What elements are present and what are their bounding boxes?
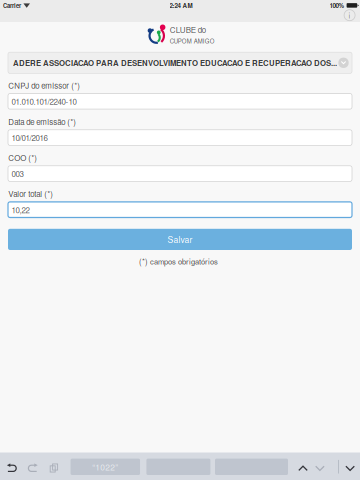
button[interactable]: Salvar: [8, 229, 352, 250]
staticText: 2:24 AM: [169, 1, 192, 10]
staticText: CLUBE do: [170, 24, 206, 35]
button[interactable]: Hide keyboard: [342, 460, 358, 476]
staticText: 10/01/2016: [12, 132, 48, 143]
button[interactable]: Paste: [46, 460, 62, 476]
button[interactable]: ADERE ASSOCIACAO PARA DESENVOLVIMENTO ED…: [8, 52, 352, 73]
staticText: “1022”: [92, 461, 118, 473]
button[interactable]: Info: [343, 9, 356, 22]
button[interactable]: Undo: [4, 460, 20, 476]
staticText: ADERE ASSOCIACAO PARA DESENVOLVIMENTO ED…: [13, 57, 337, 68]
staticText: CNPJ do emissor (*): [8, 80, 80, 91]
staticText: (*) campos obrigatórios: [139, 256, 218, 267]
staticText: Salvar: [167, 233, 192, 245]
staticText: CUPOM AMIGO: [170, 37, 215, 45]
button[interactable]: “1022”: [70, 459, 140, 475]
button[interactable]: Redo: [25, 460, 41, 476]
button[interactable]: Next field: [312, 460, 328, 476]
staticText: 100%: [330, 1, 345, 10]
staticText: Carrier: [3, 1, 21, 10]
staticText: 01.010.101/2240-10: [12, 96, 77, 107]
button[interactable]: Previous field: [295, 460, 311, 476]
staticText: 10,22: [12, 204, 30, 215]
staticText: i: [349, 10, 351, 21]
staticText: 003: [12, 168, 24, 179]
staticText: Data de emissão (*): [8, 116, 76, 127]
staticText: Valor total (*): [8, 188, 53, 199]
staticText: COO (*): [8, 152, 37, 163]
